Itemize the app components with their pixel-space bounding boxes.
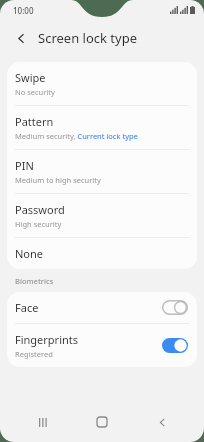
staticText: Pattern — [15, 114, 54, 129]
staticText: Face — [15, 300, 39, 315]
button[interactable]: Back — [11, 28, 31, 48]
button[interactable]: None — [7, 238, 197, 269]
staticText: Registered — [15, 349, 53, 359]
button[interactable]: Back — [145, 405, 179, 439]
staticText: Password — [15, 202, 65, 217]
button[interactable]: On — [162, 338, 188, 353]
staticText: None — [15, 246, 44, 261]
staticText: Medium security, Current lock type — [15, 131, 138, 141]
button[interactable]: Face — [7, 292, 197, 323]
button[interactable]: Password — [7, 194, 197, 237]
staticText: Screen lock type — [38, 29, 137, 47]
button[interactable]: Recents — [26, 405, 60, 439]
staticText: Biometrics — [15, 276, 54, 286]
staticText: Medium to high security — [15, 175, 101, 185]
button[interactable]: Swipe — [7, 62, 197, 105]
button[interactable]: PIN — [7, 150, 197, 193]
button[interactable]: Pattern — [7, 106, 197, 149]
staticText: PIN — [15, 158, 34, 173]
staticText: No security — [15, 87, 55, 97]
button[interactable]: Home — [85, 405, 119, 439]
staticText: Fingerprints — [15, 332, 79, 347]
staticText: High security — [15, 219, 62, 229]
button[interactable]: Fingerprints — [7, 324, 197, 367]
button[interactable]: Off — [162, 300, 188, 315]
staticText: Swipe — [15, 70, 46, 85]
staticText: 10:00 — [13, 5, 34, 16]
